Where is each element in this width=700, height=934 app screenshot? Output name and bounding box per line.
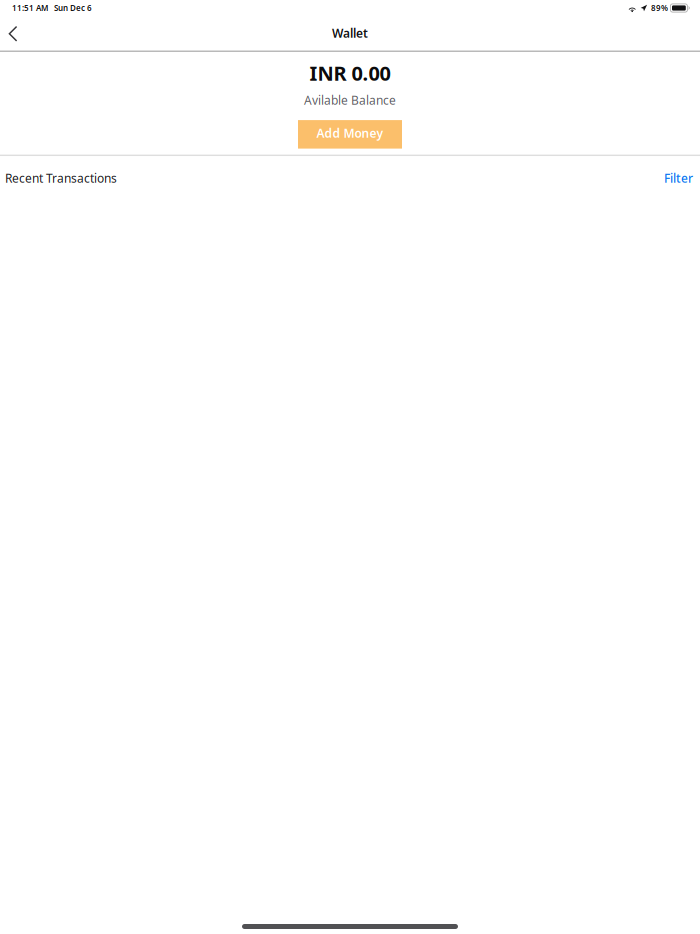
staticText: 89%	[651, 3, 668, 13]
button[interactable]: Back	[0, 18, 26, 48]
staticText: Add Money	[316, 125, 383, 141]
staticText: Wallet	[332, 25, 368, 41]
button[interactable]: Add Money	[298, 120, 402, 149]
staticText: Recent Transactions	[5, 170, 117, 186]
staticText: Sun Dec 6	[54, 3, 92, 13]
staticText: Avilable Balance	[304, 92, 396, 108]
staticText: INR 0.00	[309, 60, 390, 86]
staticText: Filter	[664, 170, 693, 186]
staticText: 11:51 AM	[12, 3, 48, 13]
button[interactable]: Filter	[657, 157, 700, 199]
